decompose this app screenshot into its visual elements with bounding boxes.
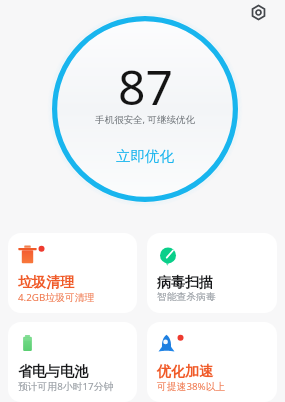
button[interactable]: 病毒扫描 (147, 233, 277, 313)
staticText: 立即优化 (116, 147, 174, 165)
staticText: 4.2GB垃圾可清理 (18, 291, 95, 304)
button[interactable]: 省电与电池 (8, 322, 137, 402)
button[interactable]: 垃圾清理 (8, 233, 137, 313)
staticText: 可提速38%以上 (157, 380, 226, 393)
button[interactable]: 立即优化 (112, 146, 178, 166)
staticText: 手机很安全, 可继续优化 (95, 113, 196, 126)
staticText: 预计可用8小时17分钟 (18, 380, 114, 393)
button[interactable]: 优化加速 (147, 322, 277, 402)
staticText: 省电与电池 (18, 363, 88, 381)
staticText: 智能查杀病毒 (157, 291, 216, 303)
staticText: 病毒扫描 (157, 274, 213, 292)
staticText: 87 (118, 54, 173, 119)
button[interactable]: Settings (244, 0, 272, 26)
staticText: 垃圾清理 (18, 274, 74, 292)
staticText: 优化加速 (157, 363, 213, 381)
